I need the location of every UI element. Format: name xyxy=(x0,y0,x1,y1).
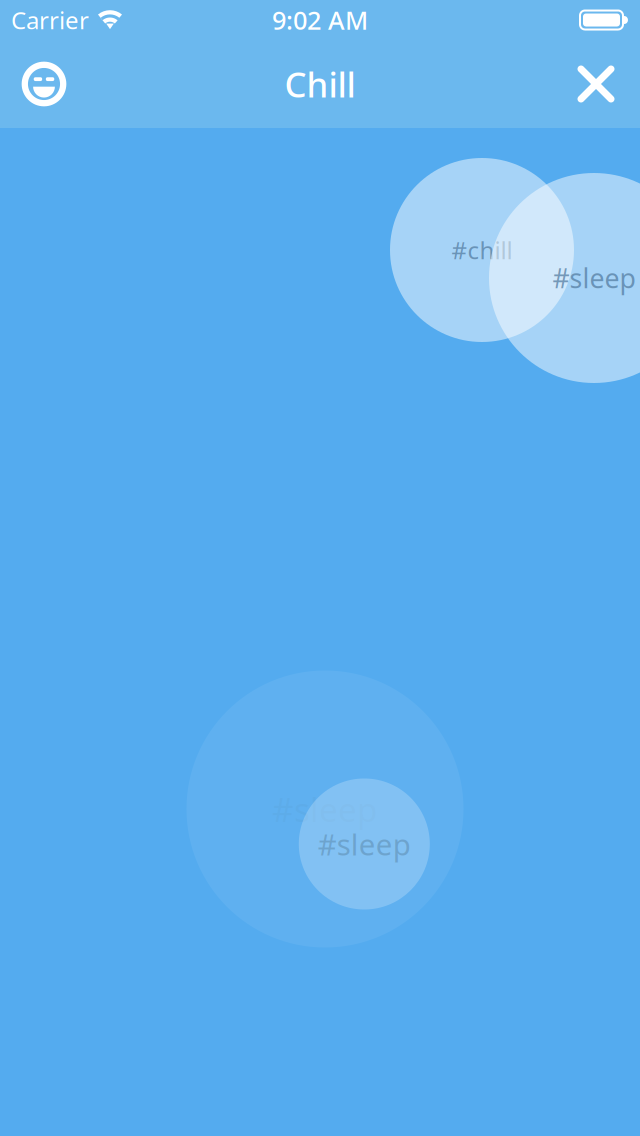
staticText: Carrier xyxy=(11,4,89,36)
staticText: #sleep xyxy=(318,824,411,863)
button[interactable]: #sleep xyxy=(489,173,640,383)
staticText: #chill xyxy=(451,234,512,266)
button[interactable]: #chill xyxy=(390,158,574,342)
staticText: 9:02 AM xyxy=(272,3,368,37)
staticText: #sleep xyxy=(272,787,378,831)
staticText: #sleep xyxy=(552,260,635,296)
button[interactable]: Mood xyxy=(11,51,77,117)
button[interactable]: #sleep xyxy=(299,778,430,909)
staticText: Chill xyxy=(284,61,355,107)
button[interactable]: Close xyxy=(563,51,629,117)
